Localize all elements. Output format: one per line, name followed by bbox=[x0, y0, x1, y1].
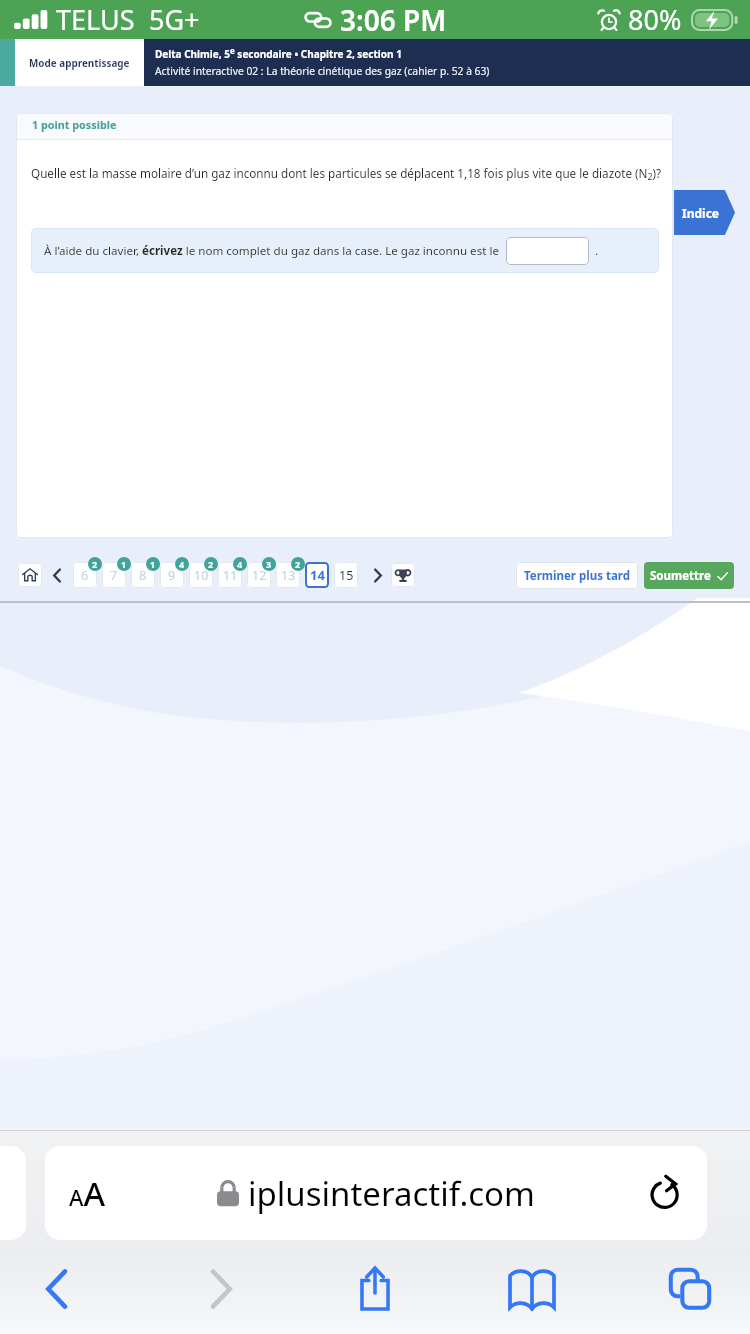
staticText: 3:06 PM bbox=[340, 1, 447, 39]
staticText: 9 bbox=[168, 567, 176, 584]
staticText: Soumettre bbox=[650, 568, 711, 584]
button[interactable]: 12 bbox=[247, 562, 271, 588]
staticText: 13 bbox=[281, 567, 296, 584]
staticText: 5G+ bbox=[149, 1, 200, 38]
staticText: 1 point possible bbox=[32, 117, 117, 132]
staticText: AA bbox=[69, 1171, 106, 1216]
staticText: À l’aide du clavier, écrivez le nom comp… bbox=[44, 243, 502, 259]
button[interactable]: Indice bbox=[674, 190, 735, 235]
button[interactable]: Partager bbox=[343, 1259, 407, 1319]
staticText: 4 bbox=[179, 558, 185, 570]
staticText: 2 bbox=[295, 558, 301, 570]
staticText: 4 bbox=[237, 558, 243, 570]
button[interactable]: Champ de réponse bbox=[506, 237, 589, 265]
staticText: 10 bbox=[194, 567, 209, 584]
button[interactable]: 6 bbox=[73, 562, 97, 588]
button[interactable]: 11 bbox=[218, 562, 242, 588]
staticText: 2 bbox=[208, 558, 214, 570]
staticText: 80% bbox=[628, 1, 682, 38]
staticText: 2 bbox=[92, 558, 98, 570]
button[interactable]: Page précédente bbox=[47, 563, 67, 587]
button[interactable]: Onglets bbox=[658, 1259, 722, 1319]
staticText: . bbox=[589, 243, 599, 259]
staticText: 1 bbox=[150, 558, 156, 570]
button[interactable]: 8 bbox=[131, 562, 155, 588]
button[interactable]: Avancer bbox=[188, 1259, 252, 1319]
button[interactable]: 14 bbox=[305, 562, 329, 588]
button[interactable]: Résultats bbox=[391, 563, 415, 587]
staticText: Mode apprentissage bbox=[29, 56, 130, 69]
button[interactable]: Accueil bbox=[18, 563, 42, 587]
staticText: 6 bbox=[81, 567, 89, 584]
staticText: Terminer plus tard bbox=[524, 568, 630, 584]
button[interactable]: Soumettre bbox=[644, 562, 734, 589]
staticText: 14 bbox=[310, 566, 325, 584]
staticText: Delta Chimie, 5e secondaire • Chapitre 2… bbox=[155, 45, 402, 61]
button[interactable]: 9 bbox=[160, 562, 184, 588]
staticText: Quelle est la masse molaire d’un gaz inc… bbox=[31, 165, 662, 183]
staticText: 3 bbox=[266, 558, 272, 570]
button[interactable]: Terminer plus tard bbox=[516, 562, 638, 589]
staticText: 8 bbox=[139, 567, 147, 584]
button[interactable]: Onglet précédent bbox=[0, 1146, 26, 1240]
staticText: 7 bbox=[110, 567, 118, 584]
staticText: Indice bbox=[682, 205, 719, 221]
staticText: 1 bbox=[121, 558, 127, 570]
button[interactable]: Page suivante bbox=[366, 563, 388, 587]
staticText: 15 bbox=[339, 567, 354, 584]
button[interactable]: 7 bbox=[102, 562, 126, 588]
button[interactable]: 10 bbox=[189, 562, 213, 588]
staticText: TELUS bbox=[56, 1, 135, 38]
button[interactable]: Taille du texte bbox=[45, 1146, 707, 1240]
button[interactable]: Retour bbox=[26, 1259, 90, 1319]
staticText: Activité interactive 02 : La théorie cin… bbox=[155, 64, 490, 78]
button[interactable]: 15 bbox=[334, 562, 358, 588]
button[interactable]: Taille du texte bbox=[69, 1170, 121, 1216]
staticText: iplusinteractif.com bbox=[248, 1171, 535, 1216]
staticText: 12 bbox=[252, 567, 267, 584]
staticText: 11 bbox=[223, 567, 238, 584]
button[interactable]: 13 bbox=[276, 562, 300, 588]
button[interactable]: Signets bbox=[500, 1259, 564, 1319]
button[interactable]: Mode apprentissage bbox=[15, 39, 144, 86]
button[interactable]: Actualiser bbox=[645, 1173, 685, 1213]
